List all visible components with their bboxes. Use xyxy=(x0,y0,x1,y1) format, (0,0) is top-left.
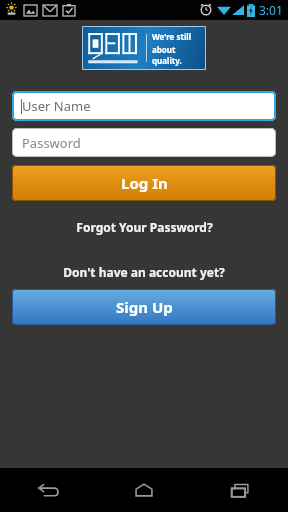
button[interactable]: Sign Up xyxy=(12,289,276,325)
button[interactable]: Forgot Your Password? xyxy=(68,217,221,237)
button[interactable]: Recent apps xyxy=(192,468,288,512)
button[interactable]: Home xyxy=(96,468,192,512)
staticText: about quality. xyxy=(152,44,202,66)
staticText: Log In xyxy=(121,173,168,193)
staticText: We're still xyxy=(152,31,192,42)
staticText: Sign Up xyxy=(116,297,173,317)
staticText: Don't have an account yet? xyxy=(63,264,225,280)
button[interactable]: Password xyxy=(12,128,276,157)
button[interactable]: Back xyxy=(0,468,96,512)
button[interactable]: User Name xyxy=(12,91,276,121)
button[interactable]: Log In xyxy=(12,165,276,201)
staticText: User Name xyxy=(22,97,91,115)
staticText: Forgot Your Password? xyxy=(76,219,213,235)
staticText: 3:01 xyxy=(259,2,283,18)
staticText: Password xyxy=(22,134,81,152)
